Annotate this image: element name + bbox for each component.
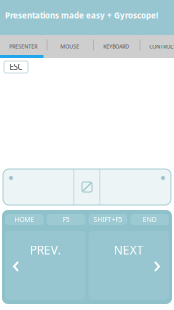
button[interactable]: SHIFT+F5 [88, 214, 127, 225]
button[interactable]: CONTROLS [139, 36, 174, 56]
staticText: HOME [14, 215, 34, 224]
button[interactable]: PRESENTER [0, 36, 46, 56]
staticText: SHIFT+F5 [93, 215, 122, 224]
staticText: ESC [9, 62, 22, 72]
button[interactable]: MOUSE [46, 36, 93, 56]
button[interactable]: F5 [47, 214, 86, 225]
staticText: PREV. [30, 242, 61, 258]
button[interactable]: NEXT [88, 231, 169, 300]
staticText: CONTROLS [149, 43, 174, 50]
button[interactable]: ESC [4, 61, 28, 73]
button[interactable]: PREV. [5, 231, 85, 300]
button[interactable]: HOME [5, 214, 44, 225]
staticText: MOUSE [60, 43, 79, 50]
staticText: PRESENTER [9, 43, 37, 50]
staticText: F5 [63, 215, 70, 224]
button[interactable]: END [130, 214, 169, 225]
staticText: NEXT [114, 242, 144, 258]
staticText: Presentations made easy + Gyroscope! [5, 10, 158, 21]
staticText: END [143, 215, 157, 224]
staticText: KEYBOARD [103, 43, 129, 50]
button[interactable]: KEYBOARD [93, 36, 139, 56]
